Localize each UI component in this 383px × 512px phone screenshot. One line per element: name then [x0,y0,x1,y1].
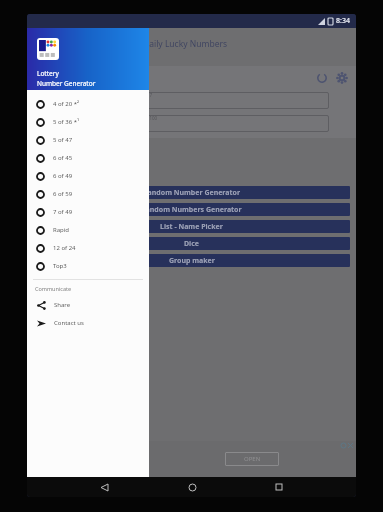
staticText: Random Number Generator [143,188,241,198]
button[interactable]: 6 of 59 [27,185,149,203]
other: Close ad [348,443,353,448]
button[interactable]: 7 of 49 [27,203,149,221]
button[interactable]: Contact us [27,314,149,332]
staticText: Contact us [54,319,84,327]
button[interactable]: 4 of 20 *² [27,95,149,113]
staticText: Communicate [35,285,72,292]
staticText: Lottery [37,69,59,78]
staticText: Number Generator [37,79,96,88]
staticText: Daily Lucky Numbers [143,38,228,50]
button[interactable]: From 1 to 100 [124,115,329,132]
button[interactable]: OPEN [225,452,279,466]
staticText: Share [54,301,71,309]
button[interactable]: Top3 [27,257,149,275]
staticText: 6 of 45 [53,154,73,162]
button[interactable] [27,92,119,109]
staticText: Random Numbers Generator [141,205,242,215]
button[interactable]: Random Numbers Generator [33,203,350,216]
button[interactable]: Settings [336,72,348,84]
button[interactable]: 6 of 49 [27,167,149,185]
button[interactable]: 12 of 24 [27,239,149,257]
button[interactable]: 5 of 36 *¹ [27,113,149,131]
staticText: Dice [184,239,200,249]
button[interactable]: Daily Lucky Numbers [143,38,228,50]
button[interactable]: 5 of 47 [27,131,149,149]
button[interactable]: Back [94,477,114,497]
staticText: From 1 to 7 [128,92,153,98]
button[interactable]: Home [182,477,202,497]
staticText: Group maker [169,256,215,266]
button[interactable]: 6 of 45 [27,149,149,167]
button[interactable]: Dice [33,237,350,250]
button[interactable]: Rapid [27,221,149,239]
button[interactable]: From 1 to 7 [124,92,329,109]
button[interactable]: Group maker [33,254,350,267]
staticText: 4 of 20 *² [53,100,80,108]
staticText: 6 of 59 [53,190,73,198]
button[interactable]: Recents [269,477,289,497]
staticText: 5 of 36 *¹ [53,118,80,126]
staticText: Top3 [53,262,67,270]
staticText: Rapid [53,226,70,234]
staticText: 12 of 24 [53,244,76,252]
button[interactable]: List - Name Picker [33,220,350,233]
staticText: OPEN [244,455,261,463]
staticText: 6 of 49 [53,172,73,180]
button[interactable]: App logo [37,38,59,60]
button[interactable]: Refresh [316,72,328,84]
button[interactable]: Random Number Generator [33,186,350,199]
button[interactable] [27,115,119,132]
button[interactable]: Share [27,296,149,314]
staticText: 5 of 47 [53,136,73,144]
staticText: From 1 to 100 [128,115,158,121]
other: Ad info [341,443,346,448]
staticText: 8:34 [336,16,350,26]
staticText: 7 of 49 [53,208,73,216]
staticText: List - Name Picker [160,222,223,232]
